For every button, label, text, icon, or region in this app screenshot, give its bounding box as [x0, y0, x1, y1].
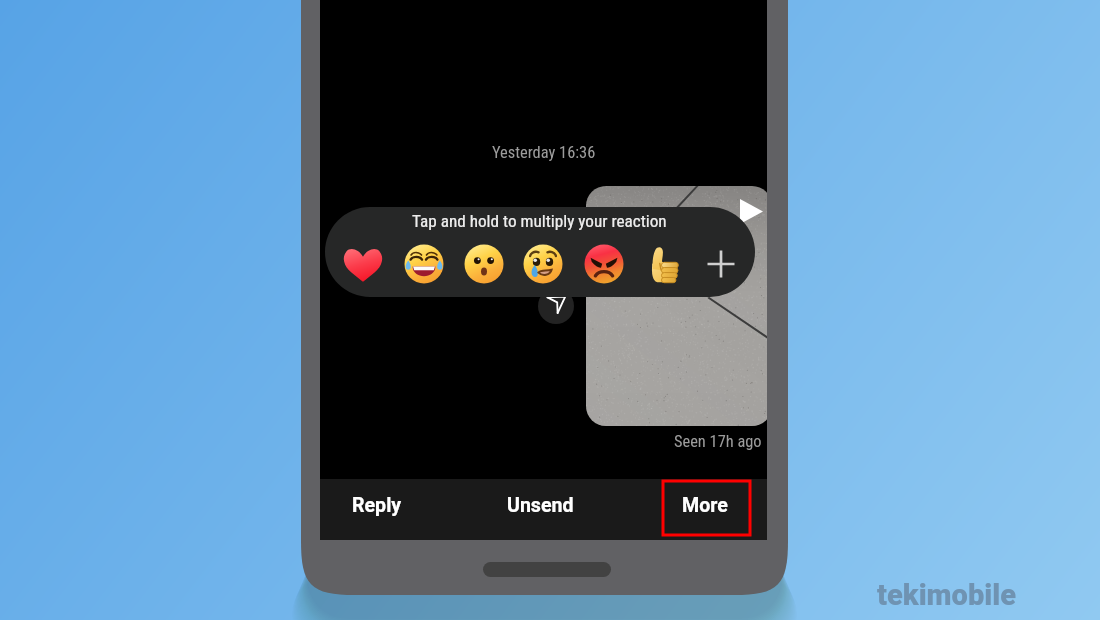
button[interactable]: Angry: [584, 244, 624, 284]
button[interactable]: More reactions: [699, 242, 743, 286]
button[interactable]: Reply: [320, 477, 435, 534]
staticText: Yesterday 16:36: [492, 143, 596, 162]
button[interactable]: Haha: [404, 244, 444, 284]
button[interactable]: Unsend: [482, 477, 598, 534]
button[interactable]: Sad: [523, 244, 563, 284]
staticText: Seen 17h ago: [674, 432, 762, 451]
staticText: tekimobile: [877, 578, 1016, 612]
staticText: Unsend: [507, 494, 574, 517]
button[interactable]: Wow: [464, 244, 504, 284]
button[interactable]: More: [663, 481, 750, 535]
staticText: Reply: [352, 494, 402, 517]
staticText: Tap and hold to multiply your reaction: [412, 211, 667, 231]
staticText: More: [682, 494, 728, 517]
button[interactable]: Play video: [739, 199, 765, 225]
button[interactable]: Like: [643, 243, 685, 285]
button[interactable]: Send: [538, 288, 574, 324]
button[interactable]: Love: [342, 243, 384, 285]
